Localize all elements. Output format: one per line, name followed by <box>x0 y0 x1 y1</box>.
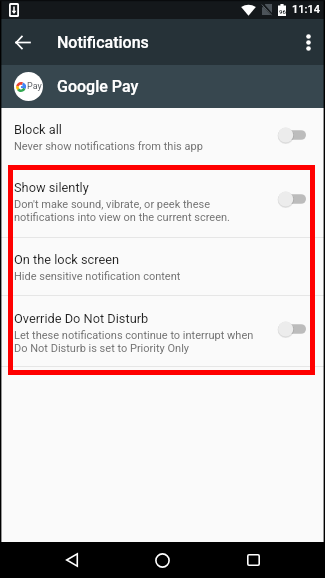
button[interactable]: On the lock screen <box>0 238 325 295</box>
button[interactable]: Navigate up <box>0 20 45 65</box>
staticText: Block all <box>14 122 62 137</box>
staticText: Do Not Disturb is set to Priority Only <box>14 342 190 355</box>
staticText: Don't make sound, vibrate, or peek these <box>14 198 210 211</box>
staticText: 11:14 <box>292 3 320 16</box>
staticText: 96 <box>279 8 286 15</box>
button[interactable]: Recent apps <box>231 542 275 578</box>
button[interactable]: Block all <box>0 108 325 165</box>
staticText: Override Do Not Disturb <box>14 311 149 326</box>
staticText: Pay <box>27 81 42 92</box>
staticText: Let these notifications continue to inte… <box>14 329 254 342</box>
staticText: On the lock screen <box>14 252 120 267</box>
staticText: Google Pay <box>57 77 139 96</box>
button[interactable]: Pay <box>0 65 325 108</box>
staticText: notifications into view on the current s… <box>14 211 230 224</box>
button[interactable]: Home <box>140 542 184 578</box>
staticText: Hide sensitive notification content <box>14 270 181 283</box>
staticText: Notifications <box>57 33 149 52</box>
button[interactable]: Back <box>50 542 94 578</box>
staticText: Show silently <box>14 180 89 195</box>
button[interactable]: Show silently <box>0 165 325 237</box>
staticText: Never show notifications from this app <box>14 140 203 153</box>
button[interactable]: Override Do Not Disturb <box>0 296 325 366</box>
button[interactable]: More options <box>285 19 325 65</box>
